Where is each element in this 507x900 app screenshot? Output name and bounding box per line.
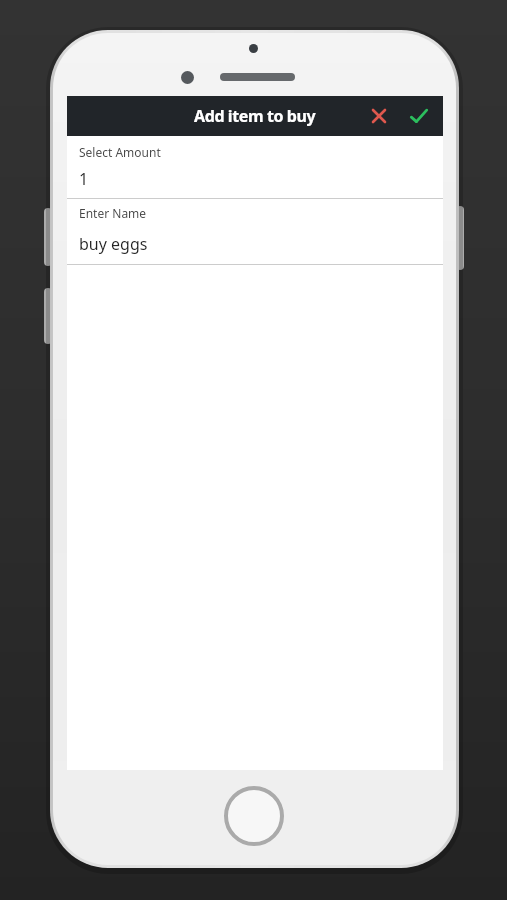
button[interactable] [405, 102, 433, 130]
staticText: 1 [79, 168, 89, 190]
button[interactable]: Select Amount [67, 136, 443, 199]
staticText: buy eggs [79, 233, 148, 255]
staticText: Enter Name [79, 205, 147, 221]
staticText: Add item to buy [194, 105, 316, 127]
staticText: Select Amount [79, 144, 161, 160]
button[interactable] [365, 102, 393, 130]
button[interactable]: Enter Name [67, 199, 443, 265]
